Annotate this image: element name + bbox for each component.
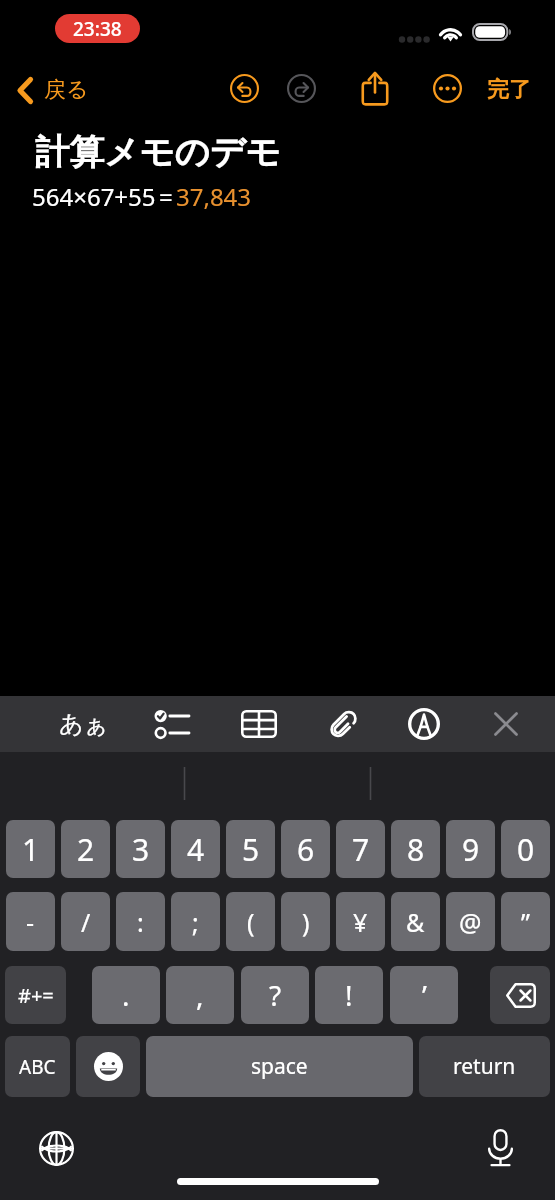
button[interactable]: 2 bbox=[61, 820, 110, 878]
staticText: ; bbox=[192, 905, 199, 939]
button[interactable]: 1 bbox=[6, 820, 55, 878]
button[interactable]: 戻る bbox=[10, 68, 99, 112]
button[interactable]: Close keyboard bbox=[479, 696, 533, 752]
staticText: return bbox=[453, 1052, 516, 1081]
staticText: , bbox=[196, 976, 204, 1014]
button[interactable]: 4 bbox=[171, 820, 220, 878]
button[interactable]: ) bbox=[281, 892, 330, 951]
staticText: 7 bbox=[352, 829, 370, 870]
staticText: ABC bbox=[19, 1054, 56, 1080]
staticText: ! bbox=[345, 976, 353, 1014]
button[interactable]: Checklist bbox=[145, 696, 199, 752]
staticText: 2 bbox=[77, 829, 95, 870]
button[interactable]: Table bbox=[232, 696, 286, 752]
button[interactable]: Dictate bbox=[480, 1128, 520, 1168]
staticText: ’ bbox=[422, 976, 427, 1014]
staticText: space bbox=[251, 1052, 308, 1081]
button[interactable]: 0 bbox=[501, 820, 550, 878]
staticText: #+= bbox=[18, 982, 54, 1009]
staticText: = bbox=[159, 180, 173, 213]
button[interactable]: ( bbox=[226, 892, 275, 951]
button[interactable]: 7 bbox=[336, 820, 385, 878]
staticText: 戻る bbox=[44, 76, 89, 104]
staticText: あぁ bbox=[59, 709, 109, 739]
staticText: ) bbox=[302, 905, 310, 939]
button[interactable]: 6 bbox=[281, 820, 330, 878]
staticText: 計算メモのデモ bbox=[35, 131, 281, 174]
button[interactable]: . bbox=[92, 966, 160, 1024]
staticText: : bbox=[137, 905, 144, 939]
staticText: 3 bbox=[132, 829, 150, 870]
button[interactable]: 3 bbox=[116, 820, 165, 878]
button[interactable]: return bbox=[419, 1036, 550, 1097]
button[interactable]: Switch keyboard bbox=[36, 1128, 76, 1168]
button[interactable]: Undo bbox=[224, 68, 264, 108]
button[interactable]: Attach bbox=[316, 696, 370, 752]
staticText: ? bbox=[269, 976, 282, 1014]
button[interactable]: ’ bbox=[390, 966, 458, 1024]
button[interactable]: ? bbox=[241, 966, 309, 1024]
button[interactable]: & bbox=[391, 892, 440, 951]
staticText: & bbox=[406, 905, 425, 939]
staticText: 0 bbox=[517, 829, 535, 870]
staticText: 5 bbox=[242, 829, 260, 870]
button[interactable]: @ bbox=[446, 892, 495, 951]
staticText: - bbox=[26, 905, 35, 939]
button[interactable]: ; bbox=[171, 892, 220, 951]
button[interactable]: space bbox=[146, 1036, 413, 1097]
button[interactable]: ABC bbox=[5, 1036, 70, 1097]
button[interactable]: - bbox=[6, 892, 55, 951]
button[interactable]: Redo bbox=[281, 68, 321, 108]
staticText: 4 bbox=[187, 829, 205, 870]
staticText: 完了 bbox=[487, 76, 531, 104]
staticText: . bbox=[122, 976, 130, 1014]
button[interactable]: 完了 bbox=[479, 68, 539, 112]
button[interactable]: : bbox=[116, 892, 165, 951]
button[interactable]: #+= bbox=[5, 966, 66, 1024]
staticText: 37,843 bbox=[176, 180, 252, 213]
staticText: ” bbox=[521, 905, 530, 939]
staticText: 6 bbox=[297, 829, 315, 870]
button[interactable]: ” bbox=[501, 892, 550, 951]
button[interactable]: / bbox=[61, 892, 110, 951]
button[interactable]: Emoji bbox=[76, 1036, 140, 1097]
staticText: 9 bbox=[462, 829, 480, 870]
staticText: 1 bbox=[22, 829, 40, 870]
staticText: 564×67+55 bbox=[32, 180, 156, 213]
button[interactable]: Delete bbox=[490, 966, 550, 1024]
button[interactable]: ¥ bbox=[336, 892, 385, 951]
staticText: 23:38 bbox=[73, 16, 122, 42]
button[interactable]: Share bbox=[353, 66, 397, 110]
staticText: @ bbox=[459, 905, 482, 939]
button[interactable]: Markup bbox=[397, 696, 451, 752]
button[interactable]: More options bbox=[427, 68, 467, 108]
button[interactable]: 8 bbox=[391, 820, 440, 878]
button[interactable]: , bbox=[166, 966, 234, 1024]
staticText: ( bbox=[247, 905, 255, 939]
button[interactable]: 5 bbox=[226, 820, 275, 878]
staticText: / bbox=[81, 905, 91, 939]
button[interactable]: 9 bbox=[446, 820, 495, 878]
button[interactable]: ! bbox=[315, 966, 383, 1024]
staticText: 8 bbox=[407, 829, 425, 870]
button[interactable]: Text format bbox=[57, 696, 111, 752]
staticText: ¥ bbox=[353, 905, 368, 939]
